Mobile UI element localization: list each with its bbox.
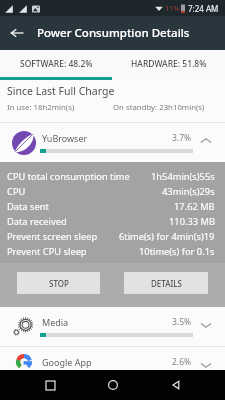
button[interactable]: STOP xyxy=(17,272,100,294)
button[interactable]: Media xyxy=(0,307,225,346)
staticText: 6time(s) for 4min(s)19 xyxy=(119,230,215,243)
staticText: Google App xyxy=(42,356,92,368)
staticText: 2.6% xyxy=(172,356,192,368)
button[interactable]: Back xyxy=(0,16,34,50)
button[interactable]: HARDWARE: 51.8% xyxy=(112,50,225,77)
staticText: 11% xyxy=(165,3,180,13)
button[interactable]: Recents xyxy=(37,370,63,400)
staticText: CPU xyxy=(7,185,26,198)
staticText: Power Consumption Details xyxy=(37,25,190,41)
staticText: Since Last Full Charge xyxy=(7,84,115,98)
staticText: Data sent xyxy=(7,200,49,213)
staticText: DETAILS xyxy=(151,278,182,289)
staticText: Prevent CPU sleep xyxy=(7,245,87,258)
button[interactable]: Google App xyxy=(0,347,225,370)
staticText: 43min(s)29s xyxy=(162,185,215,198)
button[interactable]: YuBrowser xyxy=(0,123,225,162)
staticText: In use: 18h2min(s) xyxy=(7,102,75,113)
staticText: 17.62 MB xyxy=(174,200,215,213)
staticText: SOFTWARE: 48.2% xyxy=(20,58,93,70)
staticText: YuBrowser xyxy=(42,132,88,144)
staticText: 3.7% xyxy=(172,132,192,144)
button[interactable]: Back xyxy=(163,370,189,400)
button[interactable]: Home xyxy=(100,370,126,400)
staticText: 7:24 AM xyxy=(188,3,219,14)
staticText: Prevent screen sleep xyxy=(7,230,98,243)
staticText: 3.5% xyxy=(172,316,192,328)
staticText: On standby: 23h10min(s) xyxy=(113,102,205,113)
staticText: HARDWARE: 51.8% xyxy=(131,58,207,70)
staticText: Data received xyxy=(7,215,67,228)
staticText: 1h54min(s)55s xyxy=(151,170,215,183)
button[interactable]: DETAILS xyxy=(124,272,208,294)
staticText: CPU total consumption time xyxy=(7,170,130,183)
staticText: 10time(s) for 0.1s xyxy=(139,245,215,258)
staticText: Media xyxy=(42,316,69,328)
button[interactable]: SOFTWARE: 48.2% xyxy=(0,50,112,77)
staticText: STOP xyxy=(49,278,69,289)
staticText: 110.33 MB xyxy=(169,215,215,228)
